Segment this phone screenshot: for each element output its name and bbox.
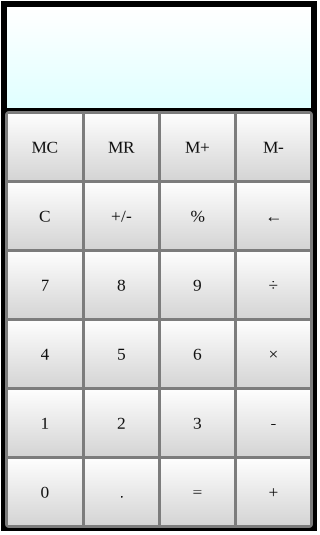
button[interactable]: MC: [8, 114, 82, 180]
staticText: ÷: [268, 275, 278, 295]
staticText: ←: [265, 206, 282, 226]
button[interactable]: ÷: [237, 252, 310, 318]
button[interactable]: 4: [8, 321, 82, 387]
button[interactable]: +/-: [85, 183, 158, 249]
button[interactable]: ×: [237, 321, 310, 387]
button[interactable]: -: [237, 390, 310, 456]
button[interactable]: +: [237, 459, 310, 525]
staticText: ×: [268, 344, 278, 364]
staticText: 0: [40, 482, 49, 502]
staticText: 1: [40, 413, 49, 433]
staticText: =: [192, 482, 202, 502]
staticText: 6: [193, 344, 202, 364]
staticText: %: [190, 206, 204, 226]
button[interactable]: %: [161, 183, 234, 249]
button[interactable]: =: [161, 459, 234, 525]
button[interactable]: 9: [161, 252, 234, 318]
staticText: 2: [117, 413, 126, 433]
staticText: MC: [31, 137, 58, 157]
staticText: 4: [40, 344, 49, 364]
button[interactable]: M+: [161, 114, 234, 180]
staticText: .: [119, 482, 123, 502]
staticText: 7: [40, 275, 49, 295]
staticText: MR: [108, 137, 135, 157]
staticText: M-: [263, 137, 284, 157]
button[interactable]: 5: [85, 321, 158, 387]
button[interactable]: MR: [85, 114, 158, 180]
staticText: -: [270, 413, 276, 433]
button[interactable]: 1: [8, 390, 82, 456]
button[interactable]: 6: [161, 321, 234, 387]
button[interactable]: 2: [85, 390, 158, 456]
staticText: +/-: [111, 206, 132, 226]
staticText: C: [39, 206, 51, 226]
staticText: +: [268, 482, 278, 502]
staticText: M+: [185, 137, 210, 157]
button[interactable]: 0: [8, 459, 82, 525]
staticText: 8: [117, 275, 126, 295]
button[interactable]: ←: [237, 183, 310, 249]
button[interactable]: C: [8, 183, 82, 249]
staticText: 5: [117, 344, 126, 364]
staticText: 9: [193, 275, 202, 295]
button[interactable]: 3: [161, 390, 234, 456]
button[interactable]: M-: [237, 114, 310, 180]
button[interactable]: 7: [8, 252, 82, 318]
button[interactable]: .: [85, 459, 158, 525]
button[interactable]: 8: [85, 252, 158, 318]
staticText: 3: [193, 413, 202, 433]
